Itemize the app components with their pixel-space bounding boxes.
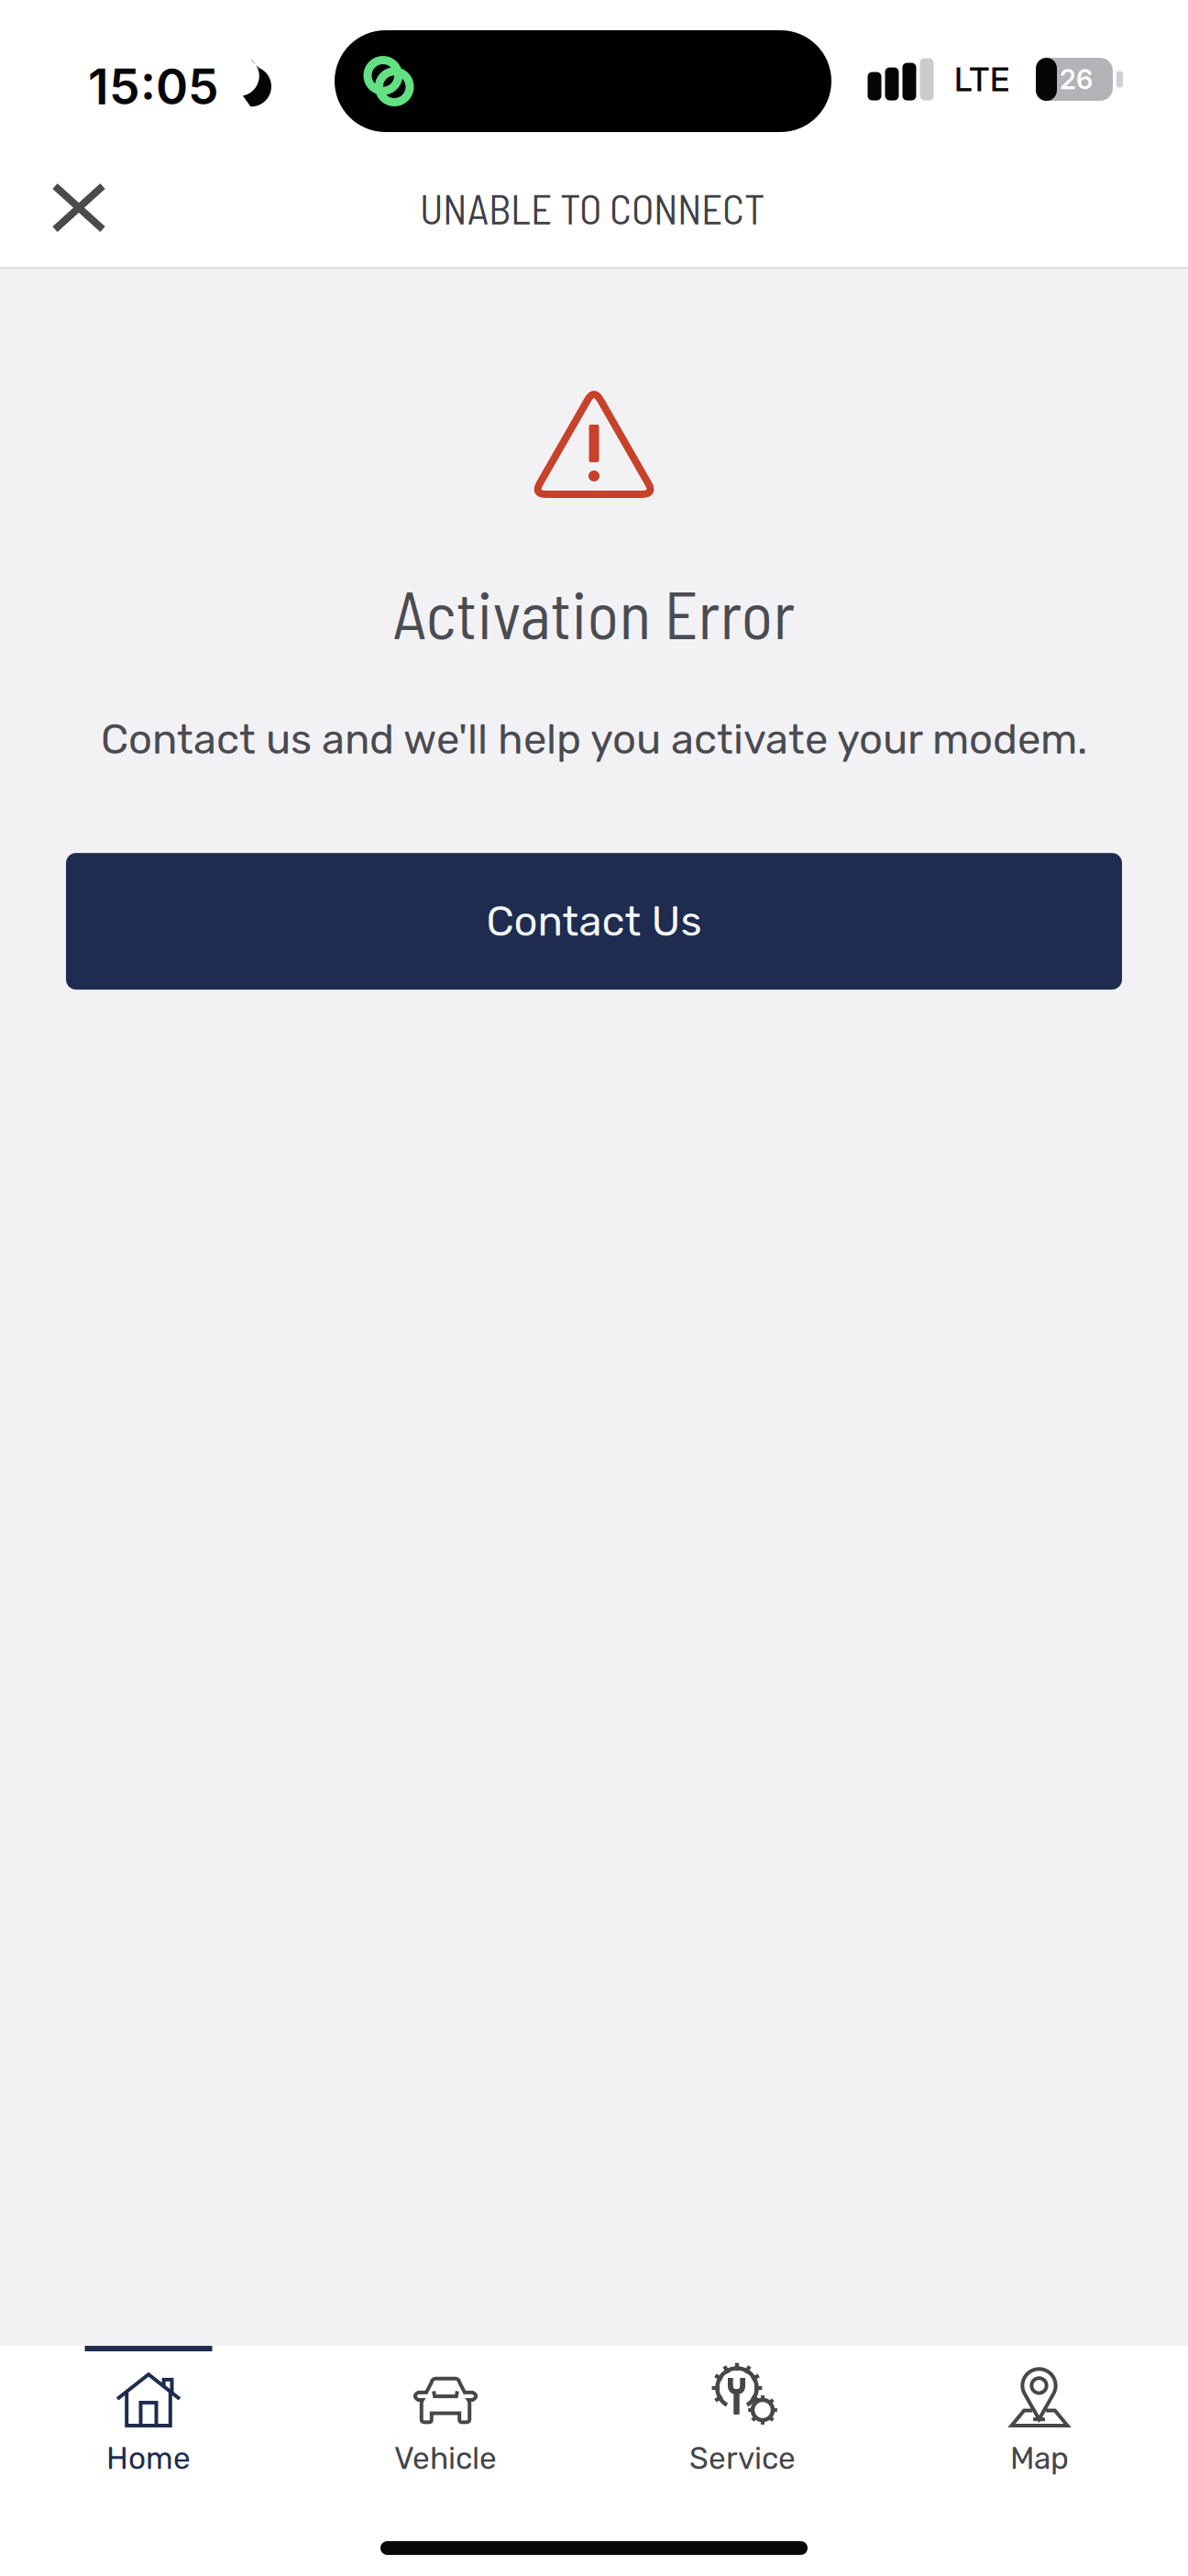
button[interactable]: Service	[594, 2346, 891, 2504]
staticText: Service	[689, 2440, 796, 2476]
staticText: Activation Error	[393, 573, 795, 652]
staticText: Contact us and we'll help you activate y…	[101, 715, 1087, 764]
staticText: Home	[106, 2440, 191, 2476]
button[interactable]: Vehicle	[297, 2346, 594, 2504]
staticText: Map	[1010, 2440, 1069, 2476]
button[interactable]: Contact Us	[66, 853, 1122, 990]
button[interactable]: Home	[0, 2346, 297, 2504]
button[interactable]: Close	[0, 154, 139, 261]
staticText: 26	[1060, 63, 1093, 96]
staticText: Vehicle	[394, 2440, 497, 2476]
button[interactable]: Map	[891, 2346, 1188, 2504]
staticText: LTE	[954, 59, 1009, 99]
staticText: UNABLE TO CONNECT	[420, 183, 764, 233]
staticText: Contact Us	[486, 897, 702, 946]
staticText: 15:05	[88, 57, 219, 116]
